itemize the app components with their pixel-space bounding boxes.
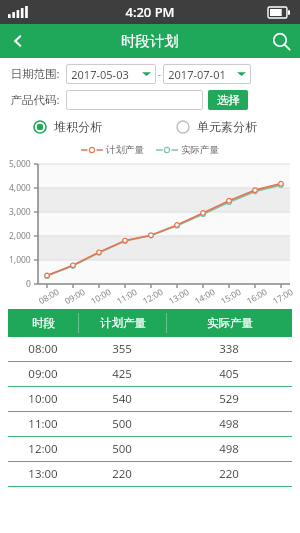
staticText: 单元素分析 <box>197 119 257 134</box>
staticText: 实际产量 <box>207 316 253 330</box>
staticText: 338 <box>219 341 239 357</box>
button[interactable]: 堆积分析 <box>30 116 105 137</box>
button[interactable] <box>66 90 203 110</box>
staticText: 500 <box>112 441 132 457</box>
staticText: 12:00 <box>28 441 58 457</box>
staticText: 500 <box>112 416 132 432</box>
button[interactable]: 单元素分析 <box>173 116 260 137</box>
staticText: 09:00 <box>28 366 58 382</box>
staticText: 425 <box>112 366 132 382</box>
staticText: 405 <box>219 366 239 382</box>
button[interactable]: 08:00 <box>8 337 292 361</box>
staticText: 4:20 PM <box>125 3 175 21</box>
button[interactable]: Search <box>262 24 300 58</box>
staticText: 日期范围: <box>10 66 60 82</box>
button[interactable]: 09:00 <box>8 362 292 386</box>
button[interactable]: Back <box>0 24 36 58</box>
staticText: 529 <box>219 391 239 407</box>
staticText: 498 <box>219 416 239 432</box>
staticText: 堆积分析 <box>54 119 102 134</box>
button[interactable]: 10:00 <box>8 387 292 411</box>
button[interactable]: 2017-07-01 <box>163 64 251 84</box>
staticText: 355 <box>112 341 132 357</box>
staticText: 时段计划 <box>121 32 179 50</box>
staticText: 选择 <box>217 93 240 107</box>
staticText: 2017-07-01 <box>168 67 226 82</box>
staticText: 11:00 <box>28 416 58 432</box>
staticText: 实际产量 <box>181 144 219 156</box>
button[interactable]: 12:00 <box>8 437 292 461</box>
staticText: 540 <box>112 391 132 407</box>
staticText: 10:00 <box>28 391 58 407</box>
button[interactable]: 11:00 <box>8 412 292 436</box>
staticText: 产品代码: <box>10 92 60 108</box>
staticText: 13:00 <box>28 466 58 482</box>
staticText: 220 <box>219 466 239 482</box>
staticText: 计划产量 <box>100 316 146 330</box>
staticText: 08:00 <box>28 341 58 357</box>
staticText: 时段 <box>32 316 55 330</box>
button[interactable]: 2017-05-03 <box>66 64 156 84</box>
button[interactable]: 选择 <box>208 90 248 110</box>
staticText: - <box>158 68 161 80</box>
staticText: 计划产量 <box>106 144 144 156</box>
staticText: 498 <box>219 441 239 457</box>
button[interactable]: 13:00 <box>8 462 292 486</box>
staticText: 220 <box>112 466 132 482</box>
staticText: 2017-05-03 <box>71 67 129 82</box>
